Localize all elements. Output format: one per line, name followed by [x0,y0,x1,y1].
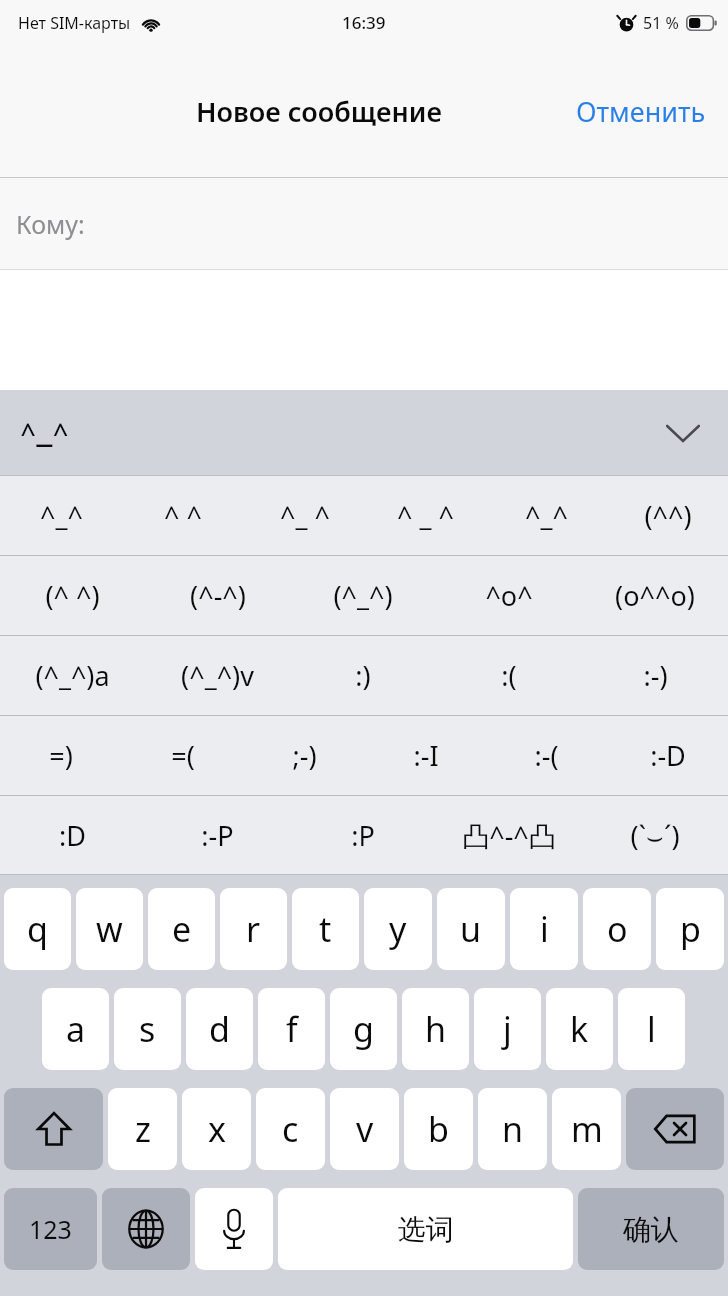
button[interactable]: ^_^ [0,476,122,555]
button[interactable]: :-) [582,636,728,715]
staticText: :P [351,817,375,854]
button[interactable]: i [510,888,578,970]
button[interactable]: l [618,988,685,1070]
staticText: n [502,1106,524,1152]
button[interactable]: :D [0,796,145,874]
staticText: d [209,1006,230,1052]
button[interactable]: :P [290,796,436,874]
button[interactable]: 确认 [578,1188,724,1270]
button[interactable]: (^_^)v [145,636,290,715]
button[interactable]: ^_ ^ [244,476,365,555]
button[interactable]: m [552,1088,621,1170]
button[interactable]: =( [122,716,244,795]
button[interactable]: :-D [607,716,728,795]
staticText: ;-) [292,737,317,774]
staticText: Отменить [576,93,706,130]
button[interactable]: Кому: [0,178,728,270]
button[interactable]: b [404,1088,473,1170]
staticText: g [353,1006,374,1052]
staticText: ^_^ [525,497,568,534]
button[interactable]: (ˋ⌣ˊ) [582,796,728,874]
button[interactable]: n [478,1088,547,1170]
button[interactable]: =) [0,716,122,795]
staticText: (o^^o) [615,577,695,614]
button[interactable]: q [4,888,71,970]
staticText: k [570,1006,589,1052]
staticText: (^_^) [333,577,393,614]
button[interactable]: Dictation [195,1188,273,1270]
button[interactable]: ^ ^ [122,476,244,555]
staticText: :-P [201,817,234,854]
staticText: =) [49,737,73,774]
button[interactable]: Change keyboard language [102,1188,190,1270]
button[interactable]: (^_^) [290,556,436,635]
button[interactable]: (^^) [607,476,728,555]
staticText: ^_ ^ [280,497,330,534]
staticText: ^ _ ^ [397,497,454,534]
button[interactable]: 123 [4,1188,97,1270]
button[interactable]: 选词 [278,1188,573,1270]
button[interactable]: ^ _ ^ [365,476,486,555]
button[interactable]: z [108,1088,177,1170]
staticText: o [607,906,628,952]
button[interactable]: Отменить [568,83,714,140]
staticText: (ˋ⌣ˊ) [630,817,680,854]
staticText: z [135,1106,151,1152]
button[interactable]: :) [290,636,436,715]
button[interactable]: ^_^ [486,476,607,555]
staticText: u [460,906,482,952]
button[interactable]: k [546,988,613,1070]
staticText: i [540,906,549,952]
staticText: :) [355,657,371,694]
staticText: 确认 [623,1212,679,1247]
button[interactable]: 凸^-^凸 [436,796,582,874]
button[interactable]: :-( [486,716,607,795]
button[interactable]: j [474,988,541,1070]
staticText: (^_^)a [35,657,110,694]
button[interactable]: ;-) [244,716,365,795]
button[interactable]: s [114,988,181,1070]
button[interactable]: (^_^)a [0,636,145,715]
button[interactable]: y [364,888,432,970]
button[interactable]: Collapse suggestions [656,406,710,460]
staticText: ^_^ [40,497,83,534]
button[interactable]: f [258,988,325,1070]
button[interactable]: c [256,1088,325,1170]
staticText: 凸^-^凸 [462,817,556,854]
button[interactable]: r [220,888,287,970]
staticText: y [389,906,407,952]
button[interactable]: Backspace [626,1088,724,1170]
staticText: l [647,1006,656,1052]
button[interactable]: :( [436,636,582,715]
button[interactable]: Shift [4,1088,103,1170]
staticText: (^-^) [190,577,246,614]
staticText: r [246,906,261,952]
button[interactable]: e [148,888,215,970]
button[interactable]: d [186,988,253,1070]
button[interactable]: u [437,888,505,970]
staticText: :-D [650,737,686,774]
button[interactable]: t [292,888,359,970]
staticText: h [425,1006,447,1052]
button[interactable]: h [402,988,469,1070]
button[interactable]: a [42,988,109,1070]
button[interactable]: x [182,1088,251,1170]
staticText: :-I [413,737,439,774]
button[interactable]: ^o^ [436,556,582,635]
button[interactable]: v [330,1088,399,1170]
button[interactable]: p [656,888,724,970]
staticText: c [282,1106,299,1152]
button[interactable]: o [583,888,651,970]
button[interactable]: (^ ^) [0,556,145,635]
staticText: a [66,1006,86,1052]
button[interactable]: g [330,988,397,1070]
staticText: 16:39 [342,11,386,34]
button[interactable]: :-I [365,716,486,795]
staticText: (^^) [644,497,692,534]
button[interactable]: w [76,888,143,970]
staticText: ^o^ [485,577,533,614]
staticText: :-) [643,657,668,694]
button[interactable]: (^-^) [145,556,290,635]
button[interactable]: :-P [145,796,290,874]
button[interactable]: (o^^o) [582,556,728,635]
